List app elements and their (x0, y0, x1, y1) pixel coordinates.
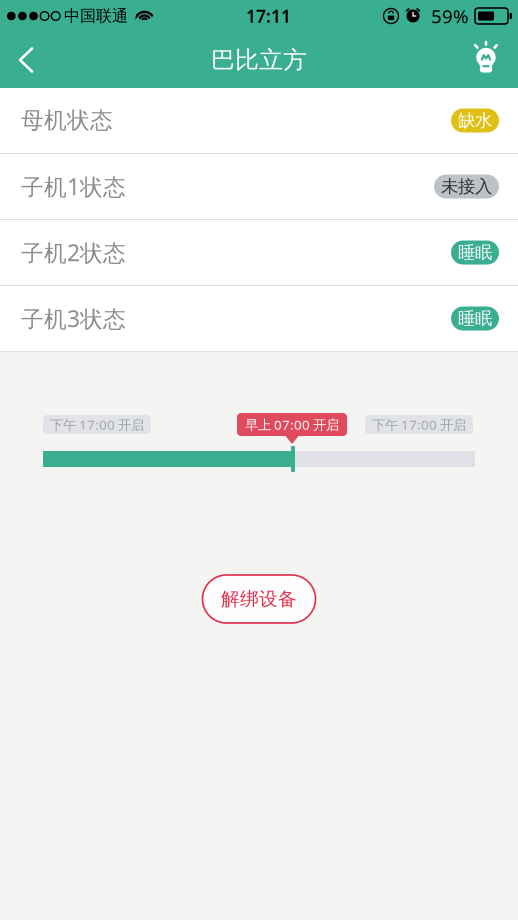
staticText: 睡眠 (458, 308, 492, 329)
button[interactable]: 子机2状态 (0, 220, 518, 286)
staticText: 早上 07:00 开启 (245, 416, 339, 433)
staticText: 巴比立方 (211, 45, 307, 75)
staticText: 解绑设备 (221, 587, 297, 610)
staticText: 下午 17:00 开启 (50, 416, 144, 433)
staticText: 17:11 (246, 4, 291, 27)
staticText: 缺水 (458, 110, 492, 131)
button[interactable]: 母机状态 (0, 88, 518, 154)
staticText: 未接入 (441, 176, 492, 197)
staticText: 下午 17:00 开启 (372, 416, 466, 433)
button[interactable]: 解绑设备 (202, 575, 315, 623)
button[interactable]: 子机3状态 (0, 286, 518, 352)
button[interactable]: 子机1状态 (0, 154, 518, 220)
staticText: 子机3状态 (21, 303, 126, 333)
staticText: 子机1状态 (21, 171, 126, 201)
staticText: 睡眠 (458, 242, 492, 263)
staticText: 中国联通 (64, 6, 128, 26)
button[interactable]: 设备信息 (451, 32, 518, 88)
button[interactable]: 返回 (0, 32, 56, 88)
staticText: 59% (431, 4, 469, 28)
staticText: 子机2状态 (21, 237, 126, 267)
staticText: 母机状态 (21, 107, 113, 134)
